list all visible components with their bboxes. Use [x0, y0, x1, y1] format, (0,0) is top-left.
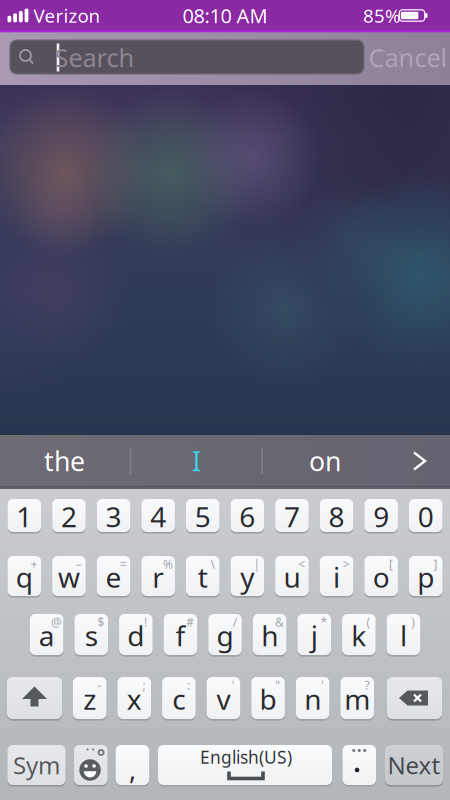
staticText: g [217, 617, 234, 654]
button[interactable]: n [296, 677, 329, 719]
staticText: e [105, 558, 121, 596]
button[interactable]: e [97, 556, 130, 596]
button[interactable]: t [186, 556, 219, 596]
button[interactable]: h [253, 614, 286, 655]
staticText: p [417, 558, 434, 596]
staticText: Search [54, 41, 134, 74]
button[interactable]: on [265, 435, 385, 486]
button[interactable]: c [162, 677, 196, 719]
button[interactable]: Next [385, 745, 443, 785]
staticText: / [233, 614, 237, 630]
button[interactable]: x [117, 677, 151, 719]
staticText: Next [387, 749, 440, 781]
staticText: on [309, 443, 341, 479]
staticText: l [400, 617, 407, 654]
button[interactable]: s [74, 614, 108, 655]
staticText: $ [97, 614, 104, 630]
button[interactable]: m [340, 677, 374, 719]
staticText: 1 [16, 498, 32, 535]
staticText: ] [433, 556, 437, 572]
button[interactable]: l [387, 614, 420, 655]
button[interactable]: g [208, 614, 242, 655]
staticText: I [192, 443, 201, 479]
button[interactable]: 8 [320, 499, 353, 532]
button[interactable]: f [164, 614, 197, 655]
staticText: 6 [239, 498, 255, 535]
staticText: = [120, 556, 127, 572]
staticText: d [127, 617, 144, 654]
staticText: o [373, 558, 390, 596]
button[interactable]: 1 [8, 499, 41, 532]
staticText: @ [51, 614, 62, 630]
button[interactable]: z [73, 677, 106, 719]
staticText: 9 [373, 498, 389, 535]
staticText: j [311, 617, 318, 654]
staticText: 0 [418, 498, 434, 535]
button[interactable]: I [136, 435, 256, 486]
button[interactable]: More suggestions [405, 444, 435, 478]
button[interactable]: Symbols [7, 745, 65, 785]
staticText: u [283, 558, 300, 596]
staticText: ! [144, 614, 147, 630]
staticText: 85% [363, 3, 401, 28]
button[interactable]: j [297, 614, 331, 655]
staticText: c [172, 680, 185, 718]
button[interactable]: d [119, 614, 153, 655]
button[interactable]: y [231, 556, 264, 596]
staticText: 7 [284, 498, 300, 535]
button[interactable]: i [320, 556, 353, 596]
staticText: < [298, 556, 305, 572]
button[interactable]: Shift [7, 677, 62, 719]
button[interactable]: o [364, 556, 398, 596]
staticText: : [187, 677, 190, 693]
button[interactable]: the [4, 435, 124, 486]
staticText: Sym [13, 749, 60, 781]
button[interactable]: q [8, 556, 41, 596]
staticText: ; [142, 677, 145, 693]
staticText: " [275, 677, 280, 693]
staticText: 08:10 AM [182, 2, 267, 29]
button[interactable]: , [116, 745, 149, 785]
button[interactable]: 7 [275, 499, 309, 532]
button[interactable]: 5 [186, 499, 219, 532]
button[interactable]: 9 [364, 499, 398, 532]
staticText: v [216, 680, 230, 718]
button[interactable]: 6 [231, 499, 264, 532]
staticText: y [240, 558, 254, 596]
staticText: z [83, 680, 96, 718]
staticText: English(US) [200, 745, 292, 768]
button[interactable]: p [409, 556, 442, 596]
staticText: i [333, 558, 340, 596]
staticText: h [261, 617, 278, 654]
staticText: , [129, 751, 136, 787]
button[interactable]: 0 [409, 499, 442, 532]
staticText: Verizon [33, 3, 100, 28]
button[interactable]: 4 [141, 499, 175, 532]
staticText: ? [364, 677, 369, 693]
staticText: ' [321, 677, 324, 693]
staticText: f [175, 617, 185, 654]
button[interactable]: Search [10, 40, 364, 74]
button[interactable]: Period [343, 745, 376, 785]
staticText: w [58, 558, 80, 596]
button[interactable]: 2 [52, 499, 86, 532]
button[interactable]: Delete [387, 677, 442, 719]
button[interactable]: b [251, 677, 285, 719]
button[interactable]: r [141, 556, 175, 596]
staticText: s [85, 617, 98, 654]
staticText: | [254, 556, 261, 572]
button[interactable]: k [342, 614, 376, 655]
button[interactable]: Space [158, 745, 332, 785]
button[interactable]: Cancel [368, 31, 448, 84]
button[interactable]: a [30, 614, 63, 655]
staticText: + [31, 556, 38, 572]
staticText: t [198, 558, 208, 596]
staticText: m [344, 680, 370, 718]
button[interactable]: Emoji [74, 745, 107, 785]
button[interactable]: v [207, 677, 240, 719]
staticText: Cancel [368, 41, 447, 74]
button[interactable]: w [52, 556, 86, 596]
staticText: ' [232, 677, 235, 693]
button[interactable]: u [275, 556, 309, 596]
button[interactable]: 3 [97, 499, 130, 532]
